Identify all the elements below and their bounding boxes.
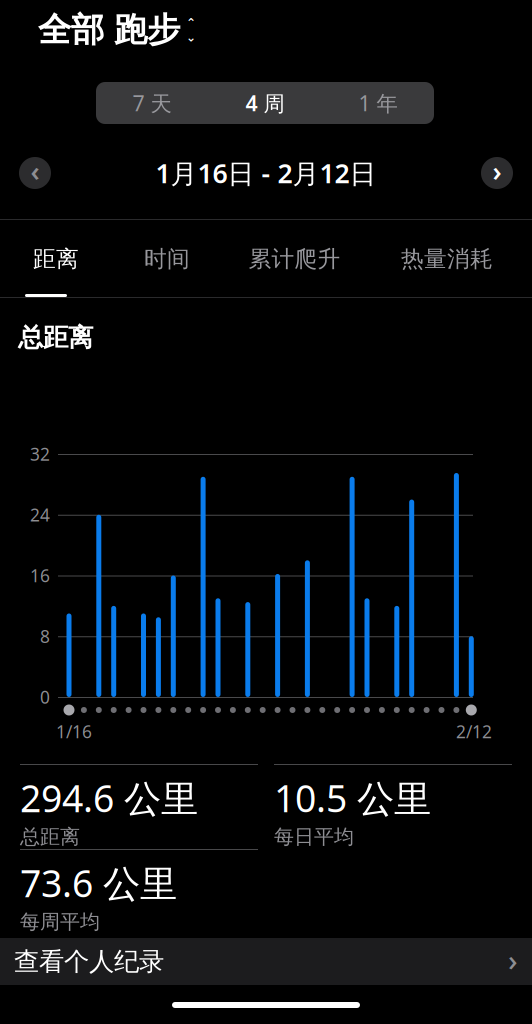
staticText: 距离	[33, 245, 79, 273]
staticText: 时间	[144, 245, 190, 273]
staticText: 1 年	[358, 89, 397, 117]
staticText: 1月16日 - 2月12日	[155, 155, 376, 191]
staticText: 1/16	[56, 720, 92, 743]
staticText: 294.6 公里	[20, 773, 198, 823]
staticText: 0	[40, 685, 50, 708]
button[interactable]: 4 周	[208, 82, 322, 124]
staticText: 总距离	[20, 825, 80, 849]
staticText: 每日平均	[274, 825, 354, 849]
staticText: ‹	[30, 153, 39, 189]
staticText: 24	[30, 503, 50, 526]
button[interactable]: 时间	[112, 221, 222, 297]
staticText: 16	[30, 564, 50, 587]
staticText: 10.5 公里	[274, 773, 431, 823]
staticText: 7 天	[132, 89, 171, 117]
button[interactable]: 下一个时间段	[481, 157, 513, 189]
staticText: 查看个人纪录	[14, 946, 164, 977]
staticText: ›	[508, 940, 518, 979]
staticText: 8	[40, 625, 50, 648]
button[interactable]: 全部 跑步	[34, 5, 200, 54]
button[interactable]: 热量消耗	[367, 221, 527, 297]
staticText: 总距离	[18, 322, 93, 353]
button[interactable]: 查看个人纪录	[0, 938, 532, 985]
staticText: 73.6 公里	[20, 858, 177, 908]
staticText: ›	[492, 153, 501, 189]
button[interactable]: 累计爬升	[222, 221, 367, 297]
button[interactable]: 上一个时间段	[19, 157, 51, 189]
staticText: 32	[30, 442, 50, 465]
staticText: 累计爬升	[248, 245, 340, 273]
staticText: ⌄	[186, 30, 196, 44]
button[interactable]: 7 天	[96, 82, 208, 124]
staticText: 每周平均	[20, 910, 100, 934]
staticText: 2/12	[456, 720, 492, 743]
staticText: 4 周	[245, 89, 284, 117]
staticText: 全部 跑步	[38, 9, 180, 50]
staticText: 热量消耗	[401, 245, 493, 273]
staticText: ⌃	[186, 16, 196, 29]
button[interactable]: 距离	[0, 221, 112, 297]
button[interactable]: 1 年	[322, 82, 434, 124]
